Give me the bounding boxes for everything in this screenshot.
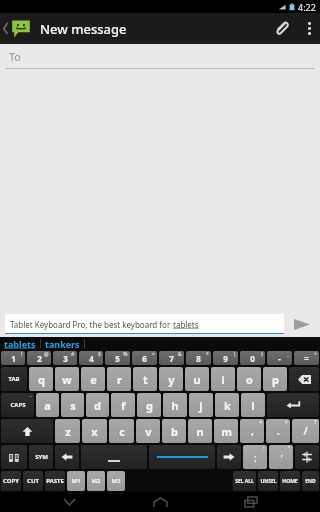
button[interactable]: .	[266, 419, 290, 443]
button[interactable]: END	[302, 471, 319, 491]
staticText: y	[168, 372, 175, 387]
button[interactable]	[1, 445, 27, 469]
staticText: CAPS	[10, 401, 26, 409]
button[interactable]: HOME	[280, 471, 300, 491]
button[interactable]: SEL ALL	[233, 471, 256, 491]
button[interactable]	[217, 445, 241, 469]
staticText: 8	[196, 353, 201, 364]
button[interactable]: More options	[298, 13, 320, 44]
button[interactable]	[295, 445, 319, 469]
staticText: @	[44, 351, 49, 358]
button[interactable]: /	[292, 419, 319, 443]
staticText: tablets	[173, 319, 199, 330]
button[interactable]: e	[81, 367, 105, 391]
button[interactable]: UNSEL	[258, 471, 278, 491]
button[interactable]: i	[211, 367, 235, 391]
button[interactable]: f	[111, 393, 135, 417]
button[interactable]: k	[215, 393, 239, 417]
button[interactable]: h	[163, 393, 187, 417]
staticText: v	[145, 424, 152, 439]
button[interactable]	[55, 445, 79, 469]
staticText: 4	[89, 353, 94, 364]
button[interactable]: 4	[79, 351, 103, 365]
staticText: ;	[254, 452, 257, 463]
button[interactable]: CUT	[23, 471, 43, 491]
button[interactable]: ;	[243, 445, 267, 469]
button[interactable]: 2	[27, 351, 51, 365]
button[interactable]: =	[294, 351, 319, 365]
button[interactable]: t	[133, 367, 157, 391]
button[interactable]: Home	[138, 492, 182, 512]
staticText: #	[71, 351, 75, 358]
button[interactable]: w	[55, 367, 79, 391]
staticText: o	[246, 372, 253, 387]
staticText: <	[259, 419, 262, 426]
button[interactable]: CAPS	[1, 393, 34, 417]
button[interactable]: ,	[240, 419, 264, 443]
button[interactable]: 9	[213, 351, 238, 365]
staticText: (	[234, 351, 236, 358]
button[interactable]	[1, 419, 53, 443]
staticText: _	[287, 351, 290, 358]
button[interactable]: PASTE	[45, 471, 65, 491]
button[interactable]: 8	[186, 351, 211, 365]
button[interactable]: COPY	[1, 471, 21, 491]
button[interactable]: Hide keyboard	[47, 492, 91, 512]
button[interactable]: n	[188, 419, 212, 443]
button[interactable]: M3	[107, 471, 125, 491]
button[interactable]: p	[263, 367, 287, 391]
button[interactable]: m	[214, 419, 238, 443]
button[interactable]: Navigate up	[0, 13, 35, 44]
staticText: w	[62, 372, 72, 387]
button[interactable]	[81, 445, 147, 469]
staticText: l	[251, 398, 255, 413]
button[interactable]: u	[185, 367, 209, 391]
staticText: c	[119, 424, 125, 439]
button[interactable]: x	[82, 419, 107, 443]
button[interactable]: M1	[67, 471, 85, 491]
button[interactable]: 0	[240, 351, 265, 365]
button[interactable]: a	[36, 393, 59, 417]
button[interactable]: tablets	[0, 338, 40, 350]
button[interactable]: q	[29, 367, 53, 391]
staticText: b	[171, 424, 178, 439]
staticText: a	[44, 398, 51, 413]
button[interactable]: To	[0, 44, 320, 69]
button[interactable]	[149, 445, 215, 469]
button[interactable]: v	[136, 419, 160, 443]
button[interactable]: tankers	[41, 338, 84, 350]
button[interactable]: Send	[284, 311, 320, 337]
button[interactable]	[289, 367, 319, 391]
button[interactable]: SYM	[29, 445, 53, 469]
button[interactable]: 6	[132, 351, 157, 365]
button[interactable]: 3	[53, 351, 77, 365]
button[interactable]: -	[267, 351, 292, 365]
button[interactable]: 7	[159, 351, 184, 365]
staticText: g	[146, 398, 153, 413]
staticText: M1	[71, 477, 81, 485]
button[interactable]: TAB	[1, 367, 27, 391]
staticText: tablets	[4, 338, 36, 350]
button[interactable]: s	[61, 393, 84, 417]
button[interactable]: r	[107, 367, 131, 391]
button[interactable]: Tablet Keyboard Pro, the best keyboard f…	[5, 314, 284, 334]
staticText: d	[94, 398, 101, 413]
button[interactable]: j	[189, 393, 213, 417]
button[interactable]: z	[55, 419, 80, 443]
button[interactable]: g	[137, 393, 161, 417]
button[interactable]: M2	[87, 471, 105, 491]
button[interactable]: l	[241, 393, 265, 417]
button[interactable]: d	[86, 393, 109, 417]
button[interactable]	[267, 393, 319, 417]
staticText: 3	[63, 353, 68, 364]
staticText: ^	[152, 351, 155, 358]
button[interactable]: b	[162, 419, 186, 443]
button[interactable]: o	[237, 367, 261, 391]
button[interactable]: Attach	[264, 13, 298, 44]
button[interactable]: 1	[1, 351, 25, 365]
button[interactable]: 5	[105, 351, 130, 365]
button[interactable]: c	[109, 419, 134, 443]
button[interactable]: y	[159, 367, 183, 391]
button[interactable]: Recent apps	[229, 492, 273, 512]
button[interactable]: '	[269, 445, 293, 469]
